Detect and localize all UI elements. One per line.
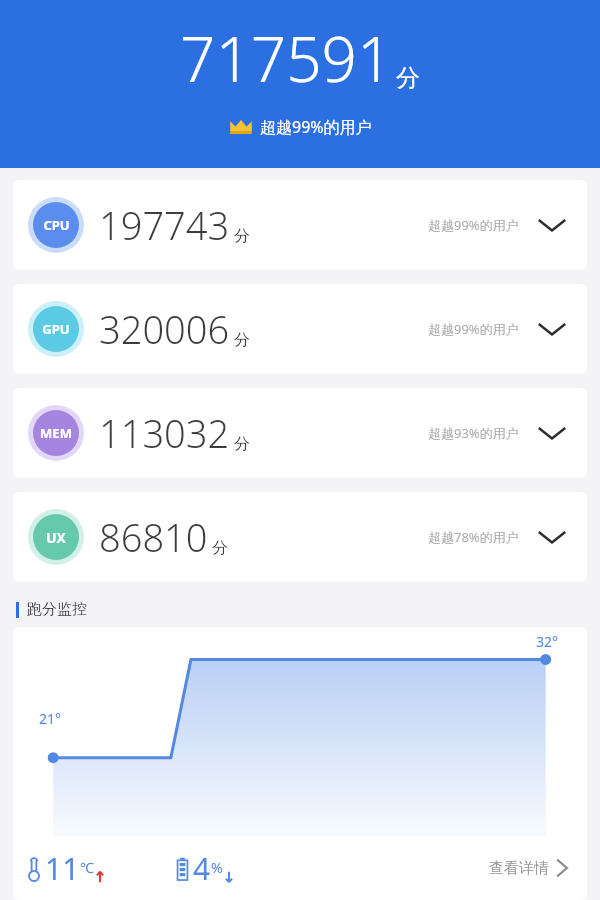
staticText: 分	[234, 330, 250, 350]
staticText: 717591	[180, 16, 393, 100]
button[interactable]: 展开 MEM 详情	[535, 416, 569, 450]
button[interactable]: 查看详情	[485, 851, 573, 885]
staticText: CPU	[43, 216, 70, 234]
staticText: UX	[46, 528, 66, 547]
staticText: 超越99%的用户	[428, 320, 519, 338]
staticText: 分	[234, 434, 250, 454]
staticText: 跑分监控	[27, 600, 87, 619]
staticText: 11	[45, 848, 80, 889]
staticText: ℃	[80, 858, 94, 877]
staticText: 超越99%的用户	[428, 216, 519, 234]
staticText: 86810	[99, 511, 208, 563]
staticText: 分	[396, 63, 420, 93]
staticText: GPU	[42, 320, 70, 338]
staticText: 320006	[99, 303, 230, 355]
staticText: 分	[212, 538, 228, 558]
button[interactable]: 展开 GPU 详情	[535, 312, 569, 346]
staticText: 超越93%的用户	[428, 424, 519, 442]
staticText: 超越99%的用户	[260, 116, 372, 138]
staticText: 197743	[99, 199, 230, 251]
staticText: 超越78%的用户	[428, 528, 519, 546]
staticText: MEM	[40, 424, 72, 442]
button[interactable]: CPU	[13, 180, 587, 270]
staticText: %	[211, 858, 223, 877]
staticText: 113032	[99, 407, 230, 459]
button[interactable]: 展开 CPU 详情	[535, 208, 569, 242]
staticText: 查看详情	[489, 859, 549, 878]
button[interactable]: MEM	[13, 388, 587, 478]
staticText: 32°	[536, 632, 559, 651]
button[interactable]: GPU	[13, 284, 587, 374]
staticText: 4	[193, 848, 211, 889]
staticText: 分	[234, 226, 250, 246]
button[interactable]: UX	[13, 492, 587, 582]
staticText: 21°	[39, 709, 62, 728]
button[interactable]: 展开 UX 详情	[535, 520, 569, 554]
